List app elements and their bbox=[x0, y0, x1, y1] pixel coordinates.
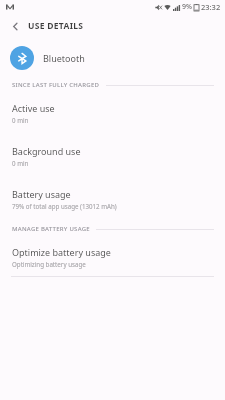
button[interactable]: Optimize battery usage bbox=[0, 246, 225, 268]
staticText: 9% bbox=[182, 2, 192, 12]
staticText: 79% of total app usage (13012 mAh) bbox=[12, 202, 117, 210]
button[interactable]: Bluetooth bbox=[0, 42, 225, 73]
staticText: Background use bbox=[12, 145, 81, 157]
button[interactable]: Battery usage bbox=[0, 188, 225, 210]
button[interactable]: Background use bbox=[0, 145, 225, 167]
staticText: Bluetooth bbox=[43, 52, 85, 64]
staticText: SINCE LAST FULLY CHARGED bbox=[12, 81, 100, 89]
staticText: Optimizing battery usage bbox=[12, 260, 86, 268]
staticText: Battery usage bbox=[12, 188, 71, 200]
staticText: USE DETAILS bbox=[28, 20, 84, 32]
staticText: 0 min bbox=[12, 116, 29, 124]
button[interactable]: Active use bbox=[0, 102, 225, 124]
staticText: Active use bbox=[12, 102, 55, 114]
staticText: 23:32 bbox=[201, 2, 221, 12]
staticText: MANAGE BATTERY USAGE bbox=[12, 225, 90, 233]
staticText: 0 min bbox=[12, 159, 29, 167]
button[interactable]: Back bbox=[6, 17, 24, 35]
staticText: Optimize battery usage bbox=[12, 246, 111, 258]
